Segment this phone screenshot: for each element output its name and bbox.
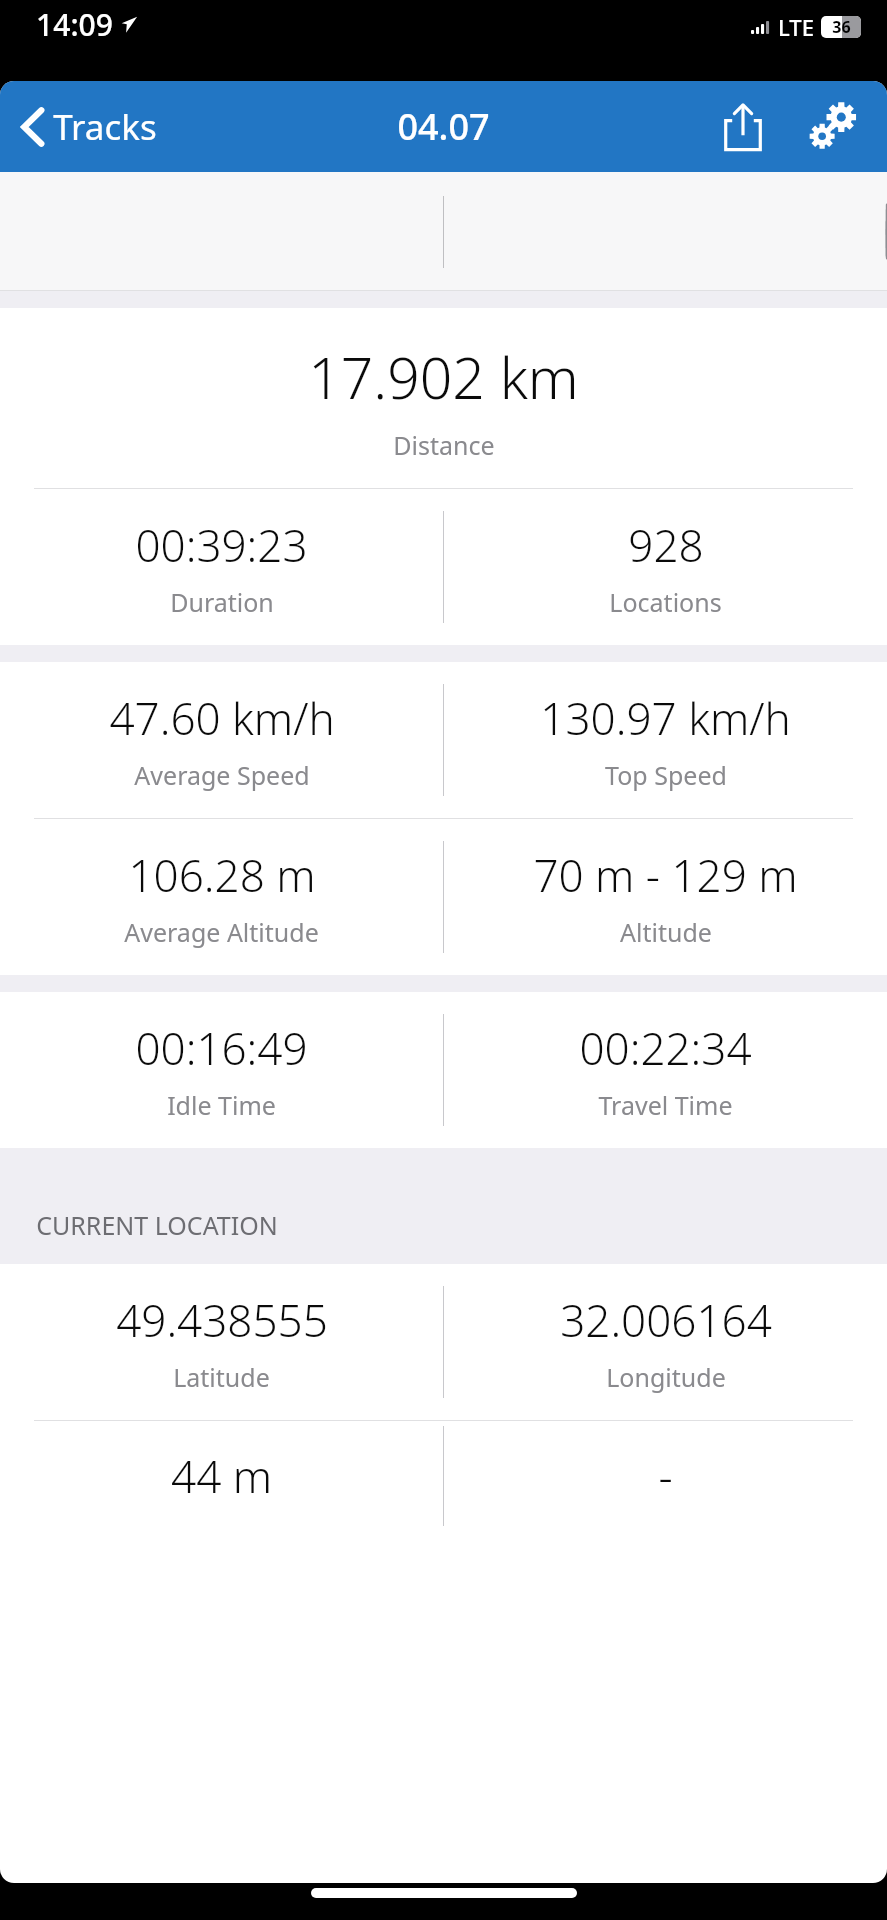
staticText: 36 [832, 16, 851, 38]
staticText: Locations [609, 585, 722, 619]
button[interactable]: 00:22:34 [444, 992, 887, 1148]
button[interactable]: 928 [444, 489, 887, 645]
button[interactable]: 106.28 m [0, 819, 443, 975]
button[interactable]: 32.006164 [444, 1264, 887, 1420]
button[interactable]: 00:16:49 [0, 992, 443, 1148]
button[interactable]: 17.902 km [0, 308, 887, 488]
staticText: 130.97 km/h [540, 688, 791, 748]
staticText: 70 m - 129 m [533, 845, 798, 905]
staticText: 14:09 [36, 4, 113, 45]
button[interactable]: Settings [797, 92, 867, 162]
button[interactable]: - [444, 1421, 887, 1531]
staticText: CURRENT LOCATION [36, 1208, 278, 1242]
staticText: 00:16:49 [135, 1018, 308, 1078]
staticText: 17.902 km [308, 338, 579, 416]
staticText: Duration [170, 585, 274, 619]
staticText: Longitude [606, 1360, 726, 1394]
staticText: Distance [393, 428, 495, 462]
button[interactable]: 49.438555 [0, 1264, 443, 1420]
staticText: Latitude [173, 1360, 270, 1394]
staticText: 106.28 m [128, 845, 316, 905]
staticText: Idle Time [167, 1088, 276, 1122]
staticText: 32.006164 [560, 1290, 772, 1350]
button[interactable]: Tracks [14, 95, 165, 159]
button[interactable]: 00:39:23 [0, 489, 443, 645]
button[interactable]: 130.97 km/h [444, 662, 887, 818]
staticText: 47.60 km/h [109, 688, 335, 748]
button[interactable]: 44 m [0, 1421, 443, 1531]
staticText: 44 m [171, 1446, 272, 1506]
staticText: 00:39:23 [135, 515, 308, 575]
staticText: 928 [628, 515, 704, 575]
button[interactable]: Share [711, 95, 775, 159]
staticText: Average Altitude [124, 915, 319, 949]
staticText: 49.438555 [116, 1290, 328, 1350]
staticText: Tracks [53, 103, 157, 151]
staticText: Top Speed [605, 758, 727, 792]
staticText: Average Speed [134, 758, 310, 792]
staticText: LTE [778, 12, 814, 42]
staticText: Altitude [620, 915, 712, 949]
button[interactable]: 47.60 km/h [0, 662, 443, 818]
button[interactable]: 70 m - 129 m [444, 819, 887, 975]
staticText: 04.07 [397, 102, 490, 151]
staticText: Travel Time [598, 1088, 733, 1122]
staticText: - [658, 1446, 673, 1506]
staticText: 00:22:34 [579, 1018, 752, 1078]
